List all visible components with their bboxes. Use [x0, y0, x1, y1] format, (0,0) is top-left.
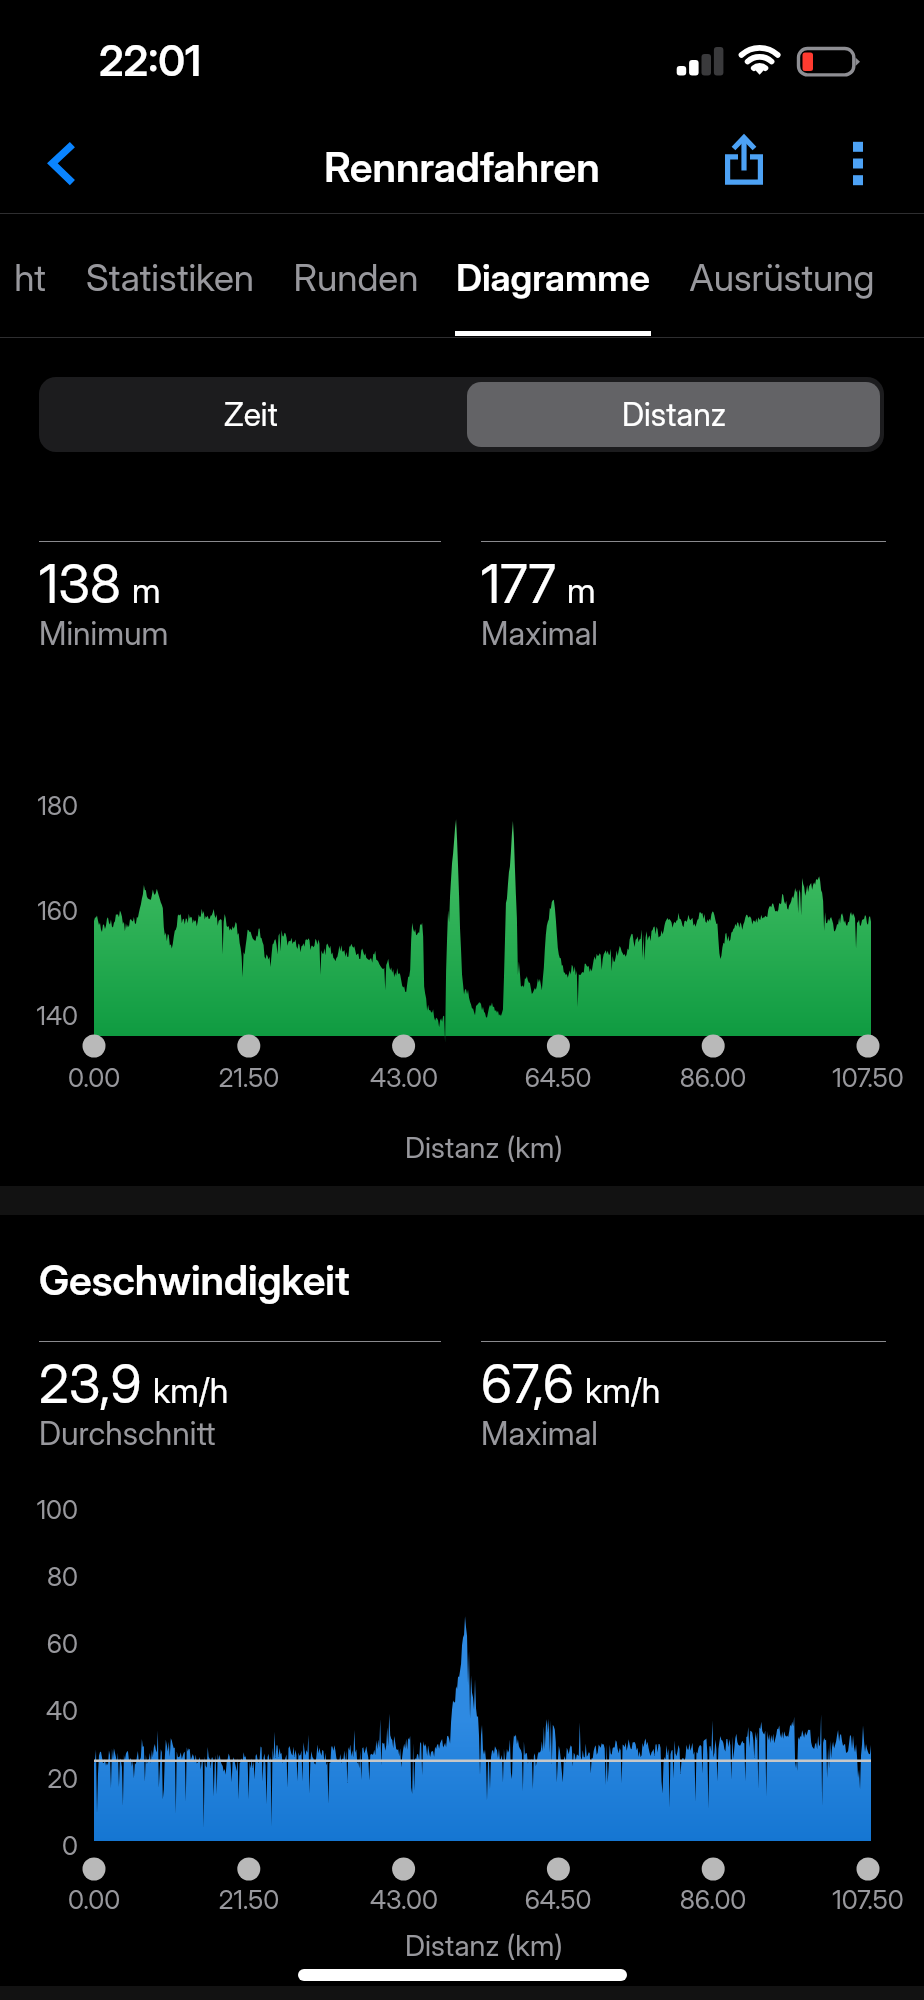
staticText: km/h	[153, 1370, 229, 1411]
button[interactable]: ht	[0, 214, 76, 338]
staticText: Maximal	[481, 614, 598, 653]
staticText: 40	[0, 1695, 78, 1726]
staticText: 60	[0, 1628, 78, 1659]
staticText: 21.50	[129, 1884, 369, 1915]
staticText: 23,9	[39, 1352, 142, 1416]
staticText: Rennradfahren	[0, 142, 924, 192]
staticText: Distanz (km)	[234, 1130, 734, 1165]
staticText: 64.50	[438, 1062, 678, 1093]
staticText: 180	[0, 790, 78, 821]
staticText: 22:01	[99, 35, 201, 86]
button[interactable]: Zeit	[39, 377, 463, 452]
staticText: 86.00	[593, 1884, 833, 1915]
staticText: Diagramme	[448, 255, 658, 300]
staticText: 140	[0, 1000, 78, 1031]
button[interactable]: Ausrüstung	[682, 214, 882, 338]
button[interactable]: More options	[812, 118, 912, 214]
staticText: 43.00	[284, 1062, 524, 1093]
staticText: 21.50	[129, 1062, 369, 1093]
button[interactable]: Distanz	[467, 382, 880, 447]
staticText: 0	[0, 1830, 78, 1861]
staticText: m	[132, 570, 161, 611]
staticText: 67,6	[481, 1352, 574, 1416]
staticText: ht	[0, 255, 76, 300]
staticText: 0.00	[0, 1062, 214, 1093]
staticText: 20	[0, 1763, 78, 1794]
staticText: Zeit	[224, 395, 278, 434]
staticText: Distanz (km)	[234, 1928, 734, 1963]
staticText: 100	[0, 1494, 78, 1525]
staticText: 86.00	[593, 1062, 833, 1093]
staticText: 0.00	[0, 1884, 214, 1915]
staticText: 177	[481, 552, 556, 616]
staticText: Ausrüstung	[682, 255, 882, 300]
button[interactable]: Share	[690, 118, 798, 214]
staticText: km/h	[585, 1370, 661, 1411]
button[interactable]: Diagramme	[448, 214, 658, 338]
staticText: Distanz	[622, 395, 726, 434]
staticText: Runden	[278, 255, 434, 300]
button[interactable]: Runden	[278, 214, 434, 338]
staticText: 107.50	[748, 1884, 924, 1915]
staticText: m	[567, 570, 596, 611]
staticText: Statistiken	[76, 255, 264, 300]
staticText: 107.50	[748, 1062, 924, 1093]
staticText: Maximal	[481, 1414, 598, 1453]
staticText: 43.00	[284, 1884, 524, 1915]
staticText: 64.50	[438, 1884, 678, 1915]
staticText: Geschwindigkeit	[39, 1255, 350, 1305]
staticText: 160	[0, 895, 78, 926]
button[interactable]: Back	[8, 118, 120, 214]
staticText: 80	[0, 1561, 78, 1592]
button[interactable]: Statistiken	[76, 214, 264, 338]
staticText: Durchschnitt	[39, 1414, 216, 1453]
staticText: 138	[39, 552, 121, 616]
staticText: Minimum	[39, 614, 169, 653]
